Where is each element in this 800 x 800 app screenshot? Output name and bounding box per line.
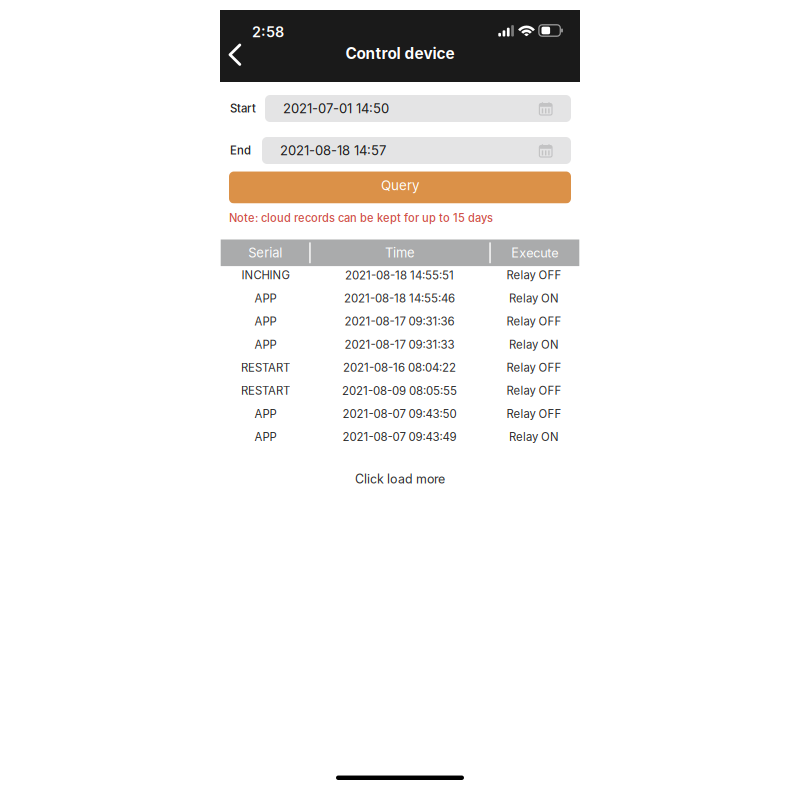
- staticText: APP: [254, 315, 276, 328]
- staticText: Serial: [248, 245, 282, 261]
- button[interactable]: 2021-07-01 14:50: [265, 95, 571, 122]
- staticText: Relay OFF: [506, 315, 561, 328]
- button[interactable]: Back: [220, 39, 250, 69]
- button[interactable]: Query: [229, 171, 571, 203]
- staticText: Relay ON: [509, 338, 559, 351]
- staticText: APP: [254, 338, 276, 351]
- staticText: APP: [254, 430, 276, 444]
- button[interactable]: Click load more: [221, 469, 578, 489]
- staticText: Execute: [511, 245, 558, 260]
- staticText: 2021-08-18 14:55:46: [344, 291, 455, 305]
- staticText: Relay ON: [509, 430, 559, 444]
- staticText: 2021-08-18 14:57: [280, 143, 386, 158]
- staticText: RESTART: [241, 384, 290, 398]
- staticText: 2021-08-17 09:31:33: [344, 338, 454, 351]
- button[interactable]: 2021-08-18 14:57: [262, 137, 571, 164]
- staticText: End: [230, 144, 251, 157]
- staticText: 2021-08-16 08:04:22: [343, 361, 456, 375]
- staticText: 2021-08-18 14:55:51: [345, 268, 454, 282]
- staticText: Query: [381, 177, 419, 193]
- staticText: Time: [385, 245, 415, 261]
- staticText: Relay OFF: [506, 268, 561, 282]
- staticText: Relay ON: [509, 291, 559, 305]
- staticText: Click load more: [355, 471, 445, 486]
- staticText: Control device: [345, 44, 454, 63]
- staticText: Start: [230, 102, 256, 115]
- staticText: 2021-07-01 14:50: [283, 101, 389, 116]
- staticText: APP: [254, 407, 276, 421]
- staticText: Note: cloud records can be kept for up t…: [229, 211, 493, 225]
- staticText: 2021-08-17 09:31:36: [344, 314, 454, 328]
- staticText: Relay OFF: [506, 361, 561, 374]
- staticText: Relay OFF: [506, 384, 561, 398]
- staticText: 2021-08-09 08:05:55: [342, 384, 457, 398]
- staticText: INCHING: [241, 268, 289, 282]
- staticText: RESTART: [241, 361, 290, 374]
- staticText: Relay OFF: [506, 407, 561, 421]
- staticText: 2:58: [252, 23, 284, 41]
- staticText: APP: [254, 291, 276, 305]
- staticText: 2021-08-07 09:43:50: [342, 407, 456, 421]
- staticText: 2021-08-07 09:43:49: [342, 430, 456, 444]
